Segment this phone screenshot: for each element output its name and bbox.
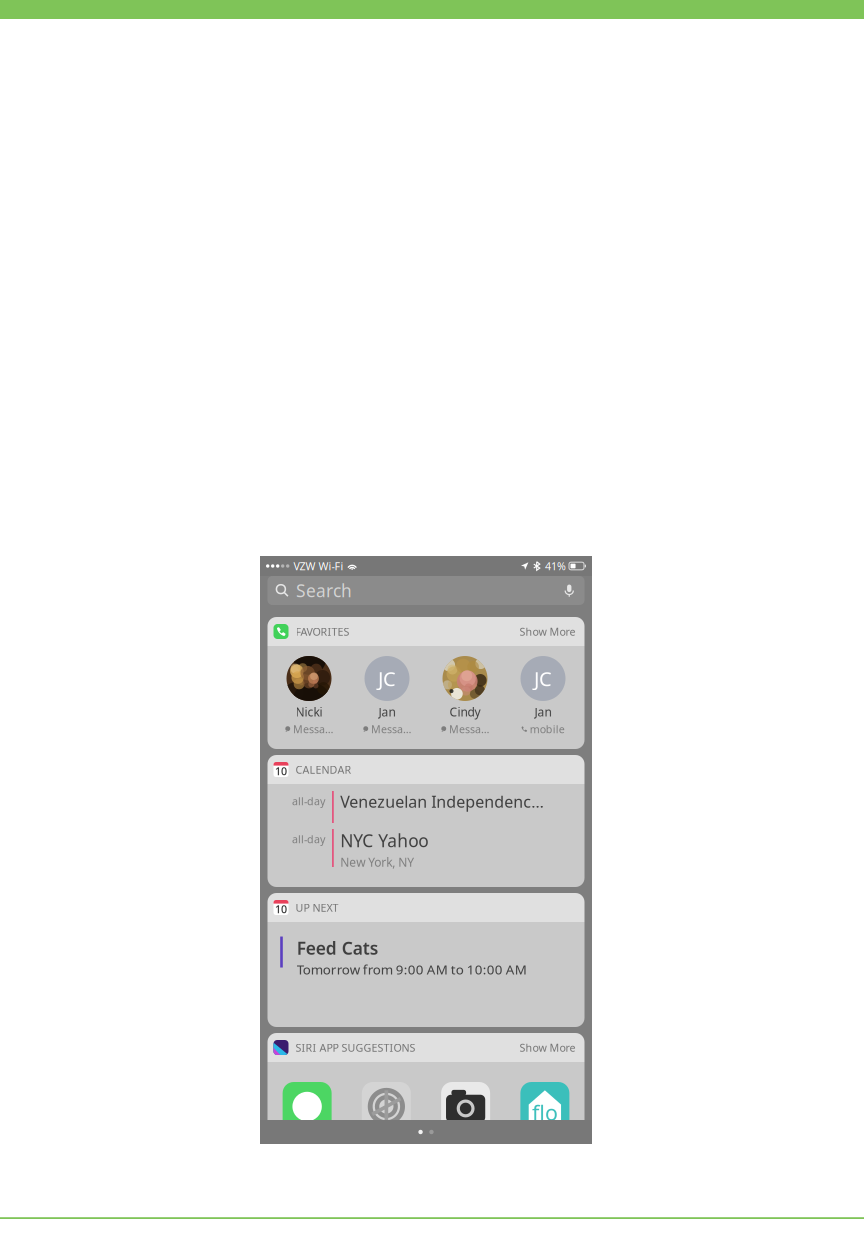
staticText: SIRI APP SUGGESTIONS <box>295 1040 415 1055</box>
staticText: New York, NY <box>340 854 414 870</box>
button[interactable]: JC <box>348 656 426 736</box>
staticText: Jan <box>534 704 551 720</box>
staticText: JC <box>534 665 552 692</box>
staticText: Jan <box>378 704 395 720</box>
staticText: all-day <box>292 794 325 808</box>
staticText: Feed Cats <box>297 936 379 959</box>
button[interactable] <box>426 1082 505 1131</box>
staticText: VZW Wi-Fi <box>293 559 343 573</box>
button[interactable]: Show More <box>511 1036 575 1059</box>
staticText: CALENDAR <box>295 762 351 777</box>
staticText: FAVORITES <box>295 624 349 639</box>
button[interactable]: Cindy <box>426 656 504 736</box>
staticText: NYC Yahoo <box>340 829 428 852</box>
staticText: 10 <box>275 764 287 778</box>
button[interactable] <box>267 1082 347 1131</box>
staticText: 10 <box>275 902 287 916</box>
button[interactable] <box>347 1082 426 1131</box>
staticText: Show More <box>519 624 575 639</box>
button[interactable]: Search <box>267 576 584 605</box>
staticText: Show More <box>519 1040 575 1055</box>
staticText: Messa… <box>293 722 333 736</box>
staticText: flo <box>532 1098 558 1126</box>
staticText: Venezuelan Independence… <box>340 791 546 812</box>
staticText: all-day <box>292 832 325 846</box>
button[interactable]: Nicki <box>270 656 348 736</box>
staticText: Cindy <box>449 704 480 720</box>
button[interactable]: Show More <box>511 620 575 643</box>
staticText: JC <box>378 665 396 692</box>
staticText: Messa… <box>449 722 489 736</box>
staticText: Tomorrow from 9:00 AM to 10:00 AM <box>297 960 527 978</box>
staticText: Nicki <box>295 704 322 720</box>
button[interactable]: flo <box>505 1082 584 1131</box>
staticText: UP NEXT <box>295 900 338 915</box>
staticText: mobile <box>530 722 565 736</box>
staticText: Messa… <box>371 722 411 736</box>
button[interactable]: JC <box>504 656 582 736</box>
staticText: Search <box>296 579 352 602</box>
staticText: 41% <box>545 559 566 573</box>
